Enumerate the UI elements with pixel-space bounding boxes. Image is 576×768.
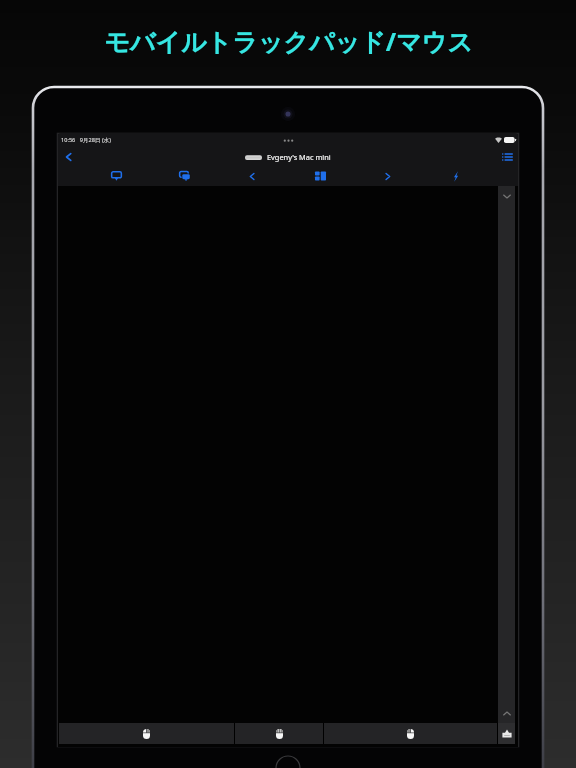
button[interactable]: Middle click bbox=[235, 723, 323, 744]
button[interactable]: Display bbox=[82, 166, 150, 186]
button[interactable]: Spaces bbox=[286, 166, 354, 186]
button[interactable]: Previous bbox=[218, 166, 286, 186]
staticText: モバイルトラックパッド/マウス bbox=[104, 24, 473, 58]
button[interactable]: Menu bbox=[496, 147, 518, 166]
button[interactable]: Scroll down bbox=[498, 186, 515, 206]
button[interactable]: Left click bbox=[59, 723, 234, 744]
button[interactable]: Next bbox=[354, 166, 422, 186]
button[interactable]: Keyboard bbox=[498, 723, 515, 744]
button[interactable]: Right click bbox=[324, 723, 497, 744]
staticText: Evgeny's Mac mini bbox=[267, 152, 331, 162]
staticText: 10:56 9月28日 (水) bbox=[61, 136, 111, 144]
button[interactable]: Power bbox=[422, 166, 490, 186]
button[interactable]: Screenshot bbox=[150, 166, 218, 186]
button[interactable]: Scroll up bbox=[498, 703, 515, 723]
button[interactable]: Back bbox=[58, 147, 78, 166]
